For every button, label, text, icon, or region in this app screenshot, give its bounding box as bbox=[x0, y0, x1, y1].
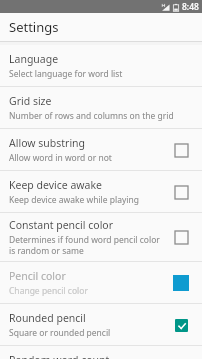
staticText: Allow word in word or not bbox=[9, 152, 112, 164]
button[interactable]: Pencil color bbox=[171, 273, 191, 293]
staticText: Select language for word list bbox=[9, 68, 123, 80]
button[interactable]: Allow substring bbox=[171, 140, 191, 160]
staticText: Keep device awake while playing bbox=[9, 194, 140, 206]
staticText: 8:48 bbox=[182, 1, 199, 13]
button[interactable]: Grid size bbox=[0, 87, 202, 128]
staticText: Rounded pencil bbox=[9, 311, 86, 325]
staticText: Settings bbox=[9, 18, 59, 36]
button[interactable]: Constant pencil color bbox=[0, 213, 202, 261]
button[interactable]: Constant pencil color bbox=[171, 227, 191, 247]
staticText: Grid size bbox=[9, 94, 52, 108]
button[interactable]: Keep device awake bbox=[171, 182, 191, 202]
staticText: Random word count bbox=[9, 353, 110, 359]
staticText: Constant pencil color bbox=[9, 218, 114, 232]
staticText: Square or rounded pencil bbox=[9, 327, 111, 339]
button[interactable]: Pencil color bbox=[0, 262, 202, 303]
button[interactable]: Allow substring bbox=[0, 129, 202, 170]
button[interactable]: Random word count bbox=[0, 346, 202, 359]
staticText: Keep device awake bbox=[9, 178, 102, 192]
staticText: Pencil color bbox=[9, 269, 66, 283]
staticText: Number of rows and columns on the grid bbox=[9, 110, 174, 122]
staticText: Language bbox=[9, 52, 59, 66]
button[interactable]: Keep device awake bbox=[0, 171, 202, 212]
button[interactable]: Rounded pencil bbox=[171, 315, 191, 335]
button[interactable]: Language bbox=[0, 45, 202, 86]
staticText: Allow substring bbox=[9, 136, 86, 150]
staticText: Determines if found word pencil color is… bbox=[9, 234, 165, 256]
staticText: Change pencil color bbox=[9, 285, 88, 297]
button[interactable]: Rounded pencil bbox=[0, 304, 202, 345]
